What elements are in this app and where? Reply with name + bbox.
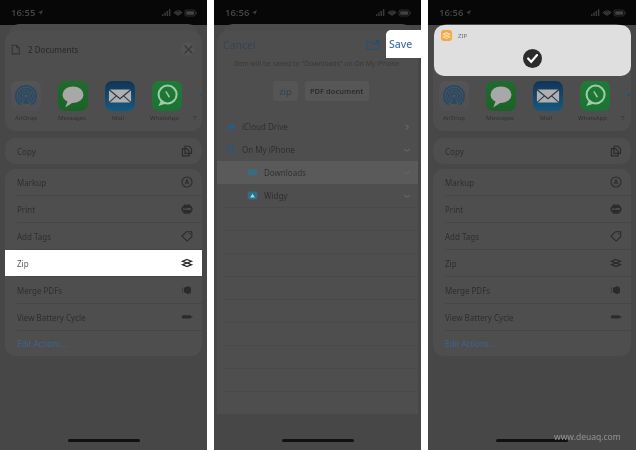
button[interactable]: Markup xyxy=(5,169,202,195)
staticText: Merge PDFs xyxy=(17,285,63,296)
staticText: Save xyxy=(389,37,413,51)
button[interactable]: Copy xyxy=(5,138,202,164)
staticText: View Battery Cycle xyxy=(445,312,514,323)
staticText: Add Tags xyxy=(17,231,52,242)
staticText: 16:56 xyxy=(225,6,250,19)
staticText: Zip xyxy=(445,258,457,269)
button[interactable] xyxy=(627,81,631,111)
button[interactable] xyxy=(580,81,610,111)
button[interactable]: Markup xyxy=(433,169,631,195)
staticText: Copy xyxy=(17,146,36,157)
staticText: Widgy xyxy=(264,190,288,201)
staticText: WhatsApp xyxy=(578,114,607,122)
button[interactable]: Print xyxy=(433,196,631,222)
button[interactable] xyxy=(105,81,135,111)
staticText: Edit Actions… xyxy=(445,338,496,349)
staticText: AirDrop xyxy=(15,114,37,122)
staticText: Markup xyxy=(17,177,47,188)
staticText: Zip xyxy=(17,258,29,269)
staticText: Mail xyxy=(112,114,124,122)
button[interactable]: Zip xyxy=(433,250,631,276)
staticText: Add Tags xyxy=(445,231,480,242)
button[interactable]: Save xyxy=(386,30,422,58)
staticText: Item will be saved to "Downloads" on On … xyxy=(227,59,408,68)
staticText: AirDrop xyxy=(443,114,465,122)
button[interactable] xyxy=(533,81,563,111)
button[interactable]: Edit Actions… xyxy=(5,331,202,356)
button[interactable]: View Battery Cycle xyxy=(5,304,202,330)
staticText: 2 Documents xyxy=(28,44,79,55)
staticText: 16:55 xyxy=(11,6,36,19)
button[interactable]: PDF document xyxy=(305,81,369,101)
button[interactable] xyxy=(152,81,182,111)
staticText: Downloads xyxy=(264,167,306,178)
button[interactable] xyxy=(439,81,469,111)
button[interactable] xyxy=(486,81,516,111)
button[interactable]: Downloads xyxy=(217,161,418,184)
staticText: www.deuaq.com xyxy=(554,431,621,443)
staticText: View Battery Cycle xyxy=(17,312,86,323)
staticText: WhatsApp xyxy=(150,114,179,122)
staticText: Merge PDFs xyxy=(445,285,491,296)
staticText: Print xyxy=(445,204,464,215)
staticText: Mail xyxy=(540,114,552,122)
button[interactable]: Add Tags xyxy=(5,223,202,249)
button[interactable]: Zip xyxy=(5,250,202,276)
button[interactable]: Print xyxy=(5,196,202,222)
staticText: Cancel xyxy=(223,38,256,52)
button[interactable]: Widgy xyxy=(217,184,418,207)
staticText: T xyxy=(193,114,197,122)
button[interactable]: Copy xyxy=(433,138,631,164)
staticText: Copy xyxy=(445,146,464,157)
staticText: Messages xyxy=(486,114,514,122)
button[interactable]: iCloud Drive xyxy=(217,115,418,138)
button[interactable] xyxy=(11,81,41,111)
staticText: T xyxy=(621,114,625,122)
staticText: Print xyxy=(17,204,36,215)
staticText: iCloud Drive xyxy=(242,121,288,132)
button[interactable] xyxy=(58,81,88,111)
button[interactable]: Merge PDFs xyxy=(433,277,631,303)
button[interactable]: Cancel xyxy=(223,31,256,58)
button[interactable]: Add Tags xyxy=(433,223,631,249)
staticText: On My iPhone xyxy=(242,144,295,155)
button[interactable]: On My iPhone xyxy=(217,138,418,161)
staticText: ZIP xyxy=(458,32,468,40)
button[interactable]: New folder xyxy=(366,38,380,52)
button[interactable]: ZIP xyxy=(434,25,631,76)
button[interactable]: Edit Actions… xyxy=(433,331,631,356)
button[interactable]: zip xyxy=(273,81,298,101)
staticText: Edit Actions… xyxy=(17,338,68,349)
staticText: Markup xyxy=(445,177,475,188)
staticText: PDF document xyxy=(310,86,364,96)
staticText: zip xyxy=(279,85,292,98)
staticText: Messages xyxy=(58,114,86,122)
staticText: 16:56 xyxy=(439,6,464,19)
button[interactable] xyxy=(199,81,202,111)
button[interactable]: View Battery Cycle xyxy=(433,304,631,330)
button[interactable]: Merge PDFs xyxy=(5,277,202,303)
button[interactable]: Close xyxy=(181,42,195,56)
